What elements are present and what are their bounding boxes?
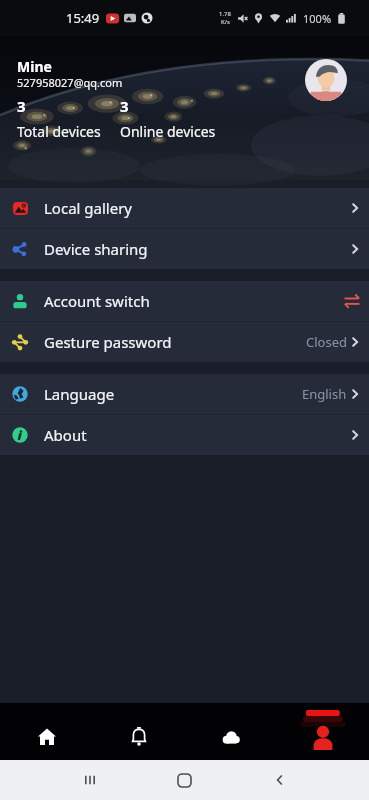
button[interactable]: Language bbox=[0, 374, 369, 414]
staticText: K/s bbox=[221, 18, 230, 26]
button[interactable] bbox=[277, 713, 369, 760]
staticText: Mine bbox=[17, 57, 52, 76]
button[interactable] bbox=[305, 59, 347, 101]
staticText: Closed bbox=[306, 333, 347, 351]
staticText: Total devices bbox=[17, 122, 101, 141]
staticText: 15:49 bbox=[66, 9, 100, 27]
button[interactable]: Device sharing bbox=[0, 229, 369, 269]
staticText: 1.78 bbox=[219, 10, 231, 18]
button[interactable] bbox=[232, 760, 327, 800]
button[interactable] bbox=[137, 760, 232, 800]
button[interactable] bbox=[42, 760, 137, 800]
staticText: 3 bbox=[120, 96, 129, 116]
staticText: Device sharing bbox=[44, 239, 148, 259]
staticText: Gesture password bbox=[44, 332, 172, 352]
button[interactable]: Account switch bbox=[0, 281, 369, 321]
staticText: 3 bbox=[17, 96, 26, 116]
button[interactable] bbox=[185, 713, 277, 760]
button[interactable]: Local gallery bbox=[0, 188, 369, 228]
staticText: Account switch bbox=[44, 291, 150, 311]
button[interactable]: Gesture password bbox=[0, 322, 369, 362]
staticText: 527958027@qq.com bbox=[17, 75, 123, 90]
staticText: Local gallery bbox=[44, 198, 133, 218]
staticText: Language bbox=[44, 384, 115, 404]
staticText: About bbox=[44, 425, 87, 445]
staticText: 100% bbox=[303, 11, 332, 26]
staticText: Online devices bbox=[120, 122, 216, 141]
button[interactable]: About bbox=[0, 415, 369, 455]
staticText: English bbox=[302, 385, 347, 403]
button[interactable] bbox=[0, 713, 93, 760]
button[interactable] bbox=[93, 713, 185, 760]
